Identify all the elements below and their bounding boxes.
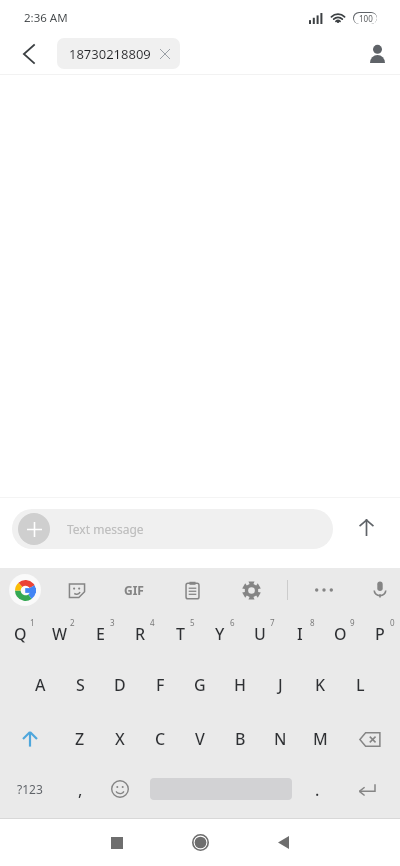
staticText: 0 bbox=[390, 617, 395, 628]
staticText: 8 bbox=[310, 617, 315, 628]
button[interactable]: Settings bbox=[229, 568, 273, 612]
button[interactable]: C bbox=[140, 712, 180, 766]
staticText: 3 bbox=[110, 617, 115, 628]
button[interactable]: H bbox=[220, 666, 260, 716]
button[interactable]: Emoji bbox=[100, 765, 140, 813]
button[interactable]: K bbox=[300, 666, 340, 716]
button[interactable]: 1 bbox=[0, 612, 40, 666]
button[interactable]: Clipboard bbox=[170, 568, 214, 612]
staticText: E bbox=[96, 623, 105, 645]
staticText: D bbox=[114, 674, 126, 696]
staticText: S bbox=[76, 674, 85, 696]
button[interactable]: Enter bbox=[339, 765, 395, 813]
button[interactable]: M bbox=[300, 712, 340, 766]
staticText: B bbox=[235, 728, 246, 750]
button[interactable]: D bbox=[100, 666, 140, 716]
staticText: ?123 bbox=[17, 781, 43, 797]
staticText: 1 bbox=[30, 617, 35, 628]
button[interactable]: Send bbox=[344, 505, 388, 549]
staticText: V bbox=[195, 728, 205, 750]
staticText: GIF bbox=[124, 582, 144, 598]
staticText: 2 bbox=[70, 617, 75, 628]
button[interactable]: Shift bbox=[0, 712, 60, 766]
staticText: N bbox=[274, 728, 287, 750]
staticText: O bbox=[334, 623, 347, 645]
button[interactable]: GIF bbox=[112, 568, 156, 612]
staticText: Text message bbox=[67, 521, 144, 537]
staticText: P bbox=[375, 623, 385, 645]
staticText: 2:36 AM bbox=[24, 10, 68, 26]
button[interactable]: B bbox=[220, 712, 260, 766]
staticText: T bbox=[176, 623, 185, 645]
button[interactable]: Contact details bbox=[355, 33, 400, 74]
button[interactable]: More options bbox=[302, 568, 346, 612]
button[interactable]: Symbols bbox=[0, 765, 60, 813]
button[interactable]: 18730218809 bbox=[57, 38, 180, 69]
button[interactable]: G bbox=[180, 666, 220, 716]
staticText: 6 bbox=[230, 617, 235, 628]
staticText: W bbox=[52, 623, 68, 645]
button[interactable]: S bbox=[60, 666, 100, 716]
staticText: 9 bbox=[350, 617, 355, 628]
button[interactable]: Recents bbox=[93, 819, 141, 866]
staticText: L bbox=[356, 674, 365, 696]
staticText: C bbox=[155, 728, 166, 750]
staticText: R bbox=[135, 623, 146, 645]
staticText: 100 bbox=[359, 13, 373, 24]
button[interactable]: Attach bbox=[18, 513, 50, 545]
button[interactable]: N bbox=[260, 712, 300, 766]
button[interactable]: A bbox=[20, 666, 60, 716]
button[interactable]: Voice input bbox=[358, 568, 400, 612]
button[interactable]: Comma bbox=[60, 765, 100, 813]
staticText: I bbox=[297, 623, 303, 645]
button[interactable]: Back bbox=[6, 33, 50, 74]
staticText: 4 bbox=[150, 617, 155, 628]
staticText: Z bbox=[75, 728, 85, 750]
staticText: 18730218809 bbox=[69, 45, 151, 63]
staticText: Q bbox=[14, 623, 27, 645]
button[interactable]: Home bbox=[176, 819, 224, 866]
staticText: J bbox=[278, 674, 283, 696]
button[interactable]: Stickers bbox=[55, 568, 99, 612]
button[interactable]: 5 bbox=[160, 612, 200, 666]
staticText: X bbox=[115, 728, 125, 750]
button[interactable]: Back bbox=[259, 819, 307, 866]
button[interactable]: Google bbox=[3, 568, 47, 612]
staticText: Y bbox=[215, 623, 225, 645]
button[interactable]: Backspace bbox=[340, 712, 400, 766]
button[interactable]: Period bbox=[297, 765, 337, 813]
staticText: 5 bbox=[190, 617, 195, 628]
staticText: . bbox=[315, 779, 320, 801]
button[interactable]: Z bbox=[60, 712, 100, 766]
staticText: M bbox=[313, 728, 328, 750]
button[interactable]: X bbox=[100, 712, 140, 766]
button[interactable]: 6 bbox=[200, 612, 240, 666]
button[interactable]: L bbox=[340, 666, 380, 716]
staticText: A bbox=[35, 674, 46, 696]
button[interactable]: 4 bbox=[120, 612, 160, 666]
button[interactable]: J bbox=[260, 666, 300, 716]
button[interactable]: 2 bbox=[40, 612, 80, 666]
button[interactable]: V bbox=[180, 712, 220, 766]
staticText: H bbox=[234, 674, 246, 696]
staticText: G bbox=[194, 674, 206, 696]
button[interactable]: 3 bbox=[80, 612, 120, 666]
staticText: 7 bbox=[270, 617, 275, 628]
button[interactable]: 8 bbox=[280, 612, 320, 666]
button[interactable]: 0 bbox=[360, 612, 400, 666]
staticText: K bbox=[315, 674, 326, 696]
staticText: , bbox=[78, 779, 83, 801]
button[interactable]: 7 bbox=[240, 612, 280, 666]
staticText: F bbox=[156, 674, 165, 696]
button[interactable]: 9 bbox=[320, 612, 360, 666]
button[interactable]: F bbox=[140, 666, 180, 716]
staticText: U bbox=[254, 623, 266, 645]
button[interactable]: Text message bbox=[12, 509, 333, 549]
